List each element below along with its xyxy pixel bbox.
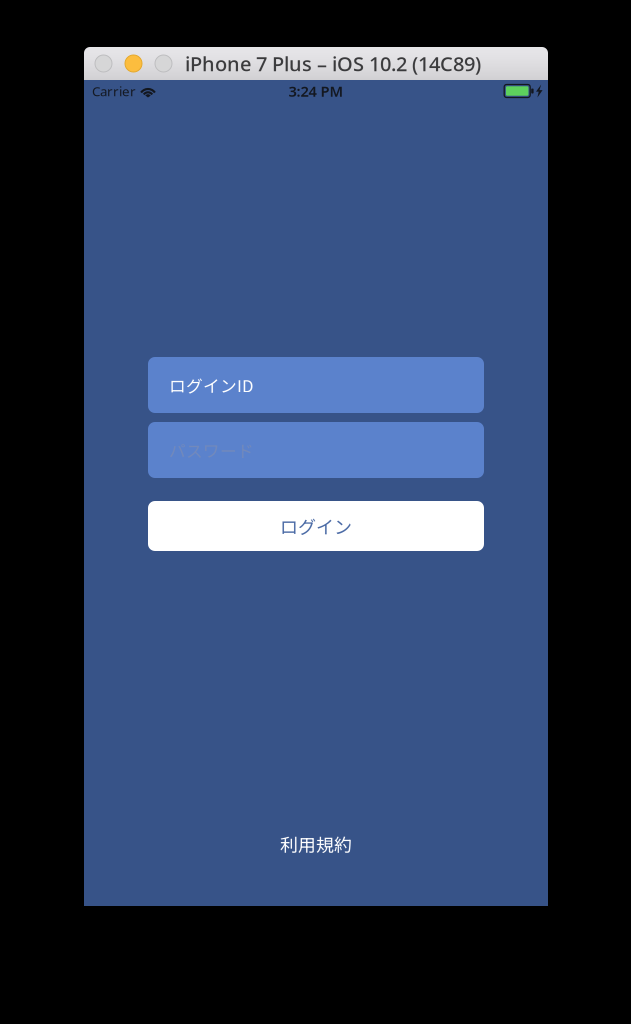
button[interactable]: パスワード xyxy=(148,422,484,478)
staticText: パスワード xyxy=(169,438,254,462)
staticText: ログイン xyxy=(280,513,352,539)
button[interactable]: Minimize window xyxy=(125,55,142,72)
button[interactable]: 利用規約 xyxy=(256,827,376,861)
staticText: 利用規約 xyxy=(280,831,352,857)
staticText: 3:24 PM xyxy=(288,81,343,101)
button[interactable]: Close window xyxy=(95,55,112,72)
staticText: ログインID xyxy=(169,373,253,397)
button[interactable]: ログイン xyxy=(148,501,484,551)
staticText: iPhone 7 Plus – iOS 10.2 (14C89) xyxy=(185,50,481,77)
staticText: Carrier xyxy=(92,82,136,100)
button[interactable]: ログインID xyxy=(148,357,484,413)
button[interactable]: Zoom window xyxy=(155,55,172,72)
